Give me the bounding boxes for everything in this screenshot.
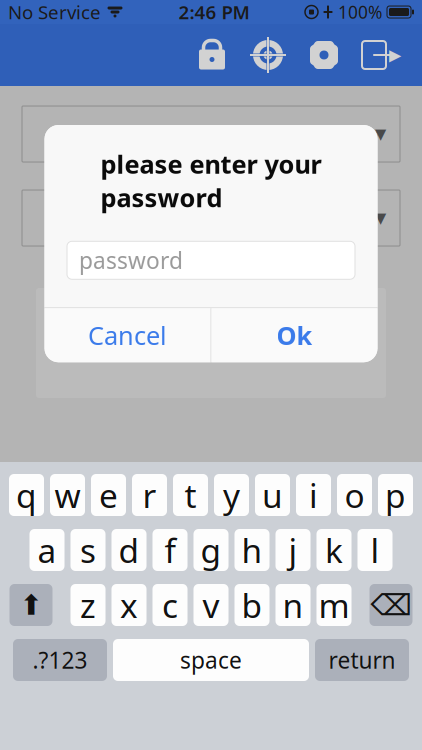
- button[interactable]: z: [70, 584, 105, 626]
- staticText: j: [288, 528, 297, 572]
- staticText: Ok: [276, 318, 312, 352]
- staticText: y: [223, 473, 240, 517]
- button[interactable]: n: [275, 584, 310, 626]
- button[interactable]: u: [255, 474, 290, 516]
- staticText: o: [344, 473, 364, 517]
- staticText: ▼: [375, 210, 386, 226]
- button[interactable]: p: [378, 474, 413, 516]
- staticText: m: [318, 583, 349, 627]
- button[interactable]: w: [50, 474, 85, 516]
- button[interactable]: e: [91, 474, 126, 516]
- button[interactable]: d: [111, 529, 146, 571]
- staticText: ▶: [389, 46, 401, 64]
- staticText: u: [262, 473, 283, 517]
- button[interactable]: o: [337, 474, 372, 516]
- staticText: ⌫: [370, 588, 411, 622]
- button[interactable]: l: [357, 529, 392, 571]
- staticText: t: [184, 473, 196, 517]
- button[interactable]: Shift: [9, 584, 52, 626]
- button[interactable]: Lock: [184, 29, 240, 81]
- button[interactable]: g: [193, 529, 228, 571]
- button[interactable]: Ok: [211, 308, 377, 362]
- button[interactable]: h: [234, 529, 269, 571]
- button[interactable]: c: [152, 584, 187, 626]
- staticText: q: [16, 473, 37, 517]
- button[interactable]: v: [193, 584, 228, 626]
- button[interactable]: j: [275, 529, 310, 571]
- button[interactable]: Delete: [369, 584, 412, 626]
- button[interactable]: a: [29, 529, 64, 571]
- button[interactable]: Locate: [240, 29, 296, 81]
- staticText: h: [241, 528, 262, 572]
- staticText: .?123: [32, 645, 87, 675]
- staticText: f: [164, 528, 175, 572]
- staticText: return: [328, 645, 395, 675]
- staticText: i: [309, 473, 318, 517]
- staticText: w: [54, 473, 80, 517]
- staticText: d: [118, 528, 139, 572]
- button[interactable]: x: [111, 584, 146, 626]
- staticText: r: [142, 473, 156, 517]
- staticText: please enter your password: [100, 147, 321, 214]
- button[interactable]: q: [9, 474, 44, 516]
- button[interactable]: space: [113, 639, 309, 681]
- button[interactable]: y: [214, 474, 249, 516]
- staticText: b: [241, 583, 262, 627]
- staticText: k: [325, 528, 343, 572]
- staticText: password: [79, 245, 183, 275]
- button[interactable]: t: [173, 474, 208, 516]
- button[interactable]: Settings: [296, 29, 352, 81]
- staticText: Cancel: [88, 318, 167, 352]
- staticText: p: [385, 473, 406, 517]
- staticText: 2:46 PM: [178, 0, 249, 24]
- staticText: printer: [137, 327, 210, 357]
- staticText: g: [200, 528, 221, 572]
- staticText: z: [80, 583, 96, 627]
- button[interactable]: m: [316, 584, 351, 626]
- button[interactable]: Cancel: [44, 308, 210, 362]
- button[interactable]: return: [315, 639, 409, 681]
- staticText: n: [282, 583, 303, 627]
- button[interactable]: Log out: [352, 29, 408, 81]
- staticText: ⬆: [19, 589, 42, 621]
- staticText: ▼: [375, 126, 386, 142]
- staticText: No Service: [8, 0, 101, 24]
- button[interactable]: i: [296, 474, 331, 516]
- button[interactable]: f: [152, 529, 187, 571]
- staticText: v: [202, 583, 219, 627]
- staticText: s: [80, 528, 96, 572]
- staticText: 100%: [338, 0, 382, 23]
- button[interactable]: s: [70, 529, 105, 571]
- button[interactable]: .?123: [13, 639, 107, 681]
- staticText: c: [162, 583, 178, 627]
- button[interactable]: b: [234, 584, 269, 626]
- button[interactable]: k: [316, 529, 351, 571]
- button[interactable]: Password field: [67, 241, 355, 279]
- staticText: x: [120, 583, 138, 627]
- button[interactable]: r: [132, 474, 167, 516]
- staticText: a: [37, 528, 56, 572]
- staticText: e: [99, 473, 118, 517]
- staticText: l: [370, 528, 379, 572]
- staticText: space: [180, 645, 242, 675]
